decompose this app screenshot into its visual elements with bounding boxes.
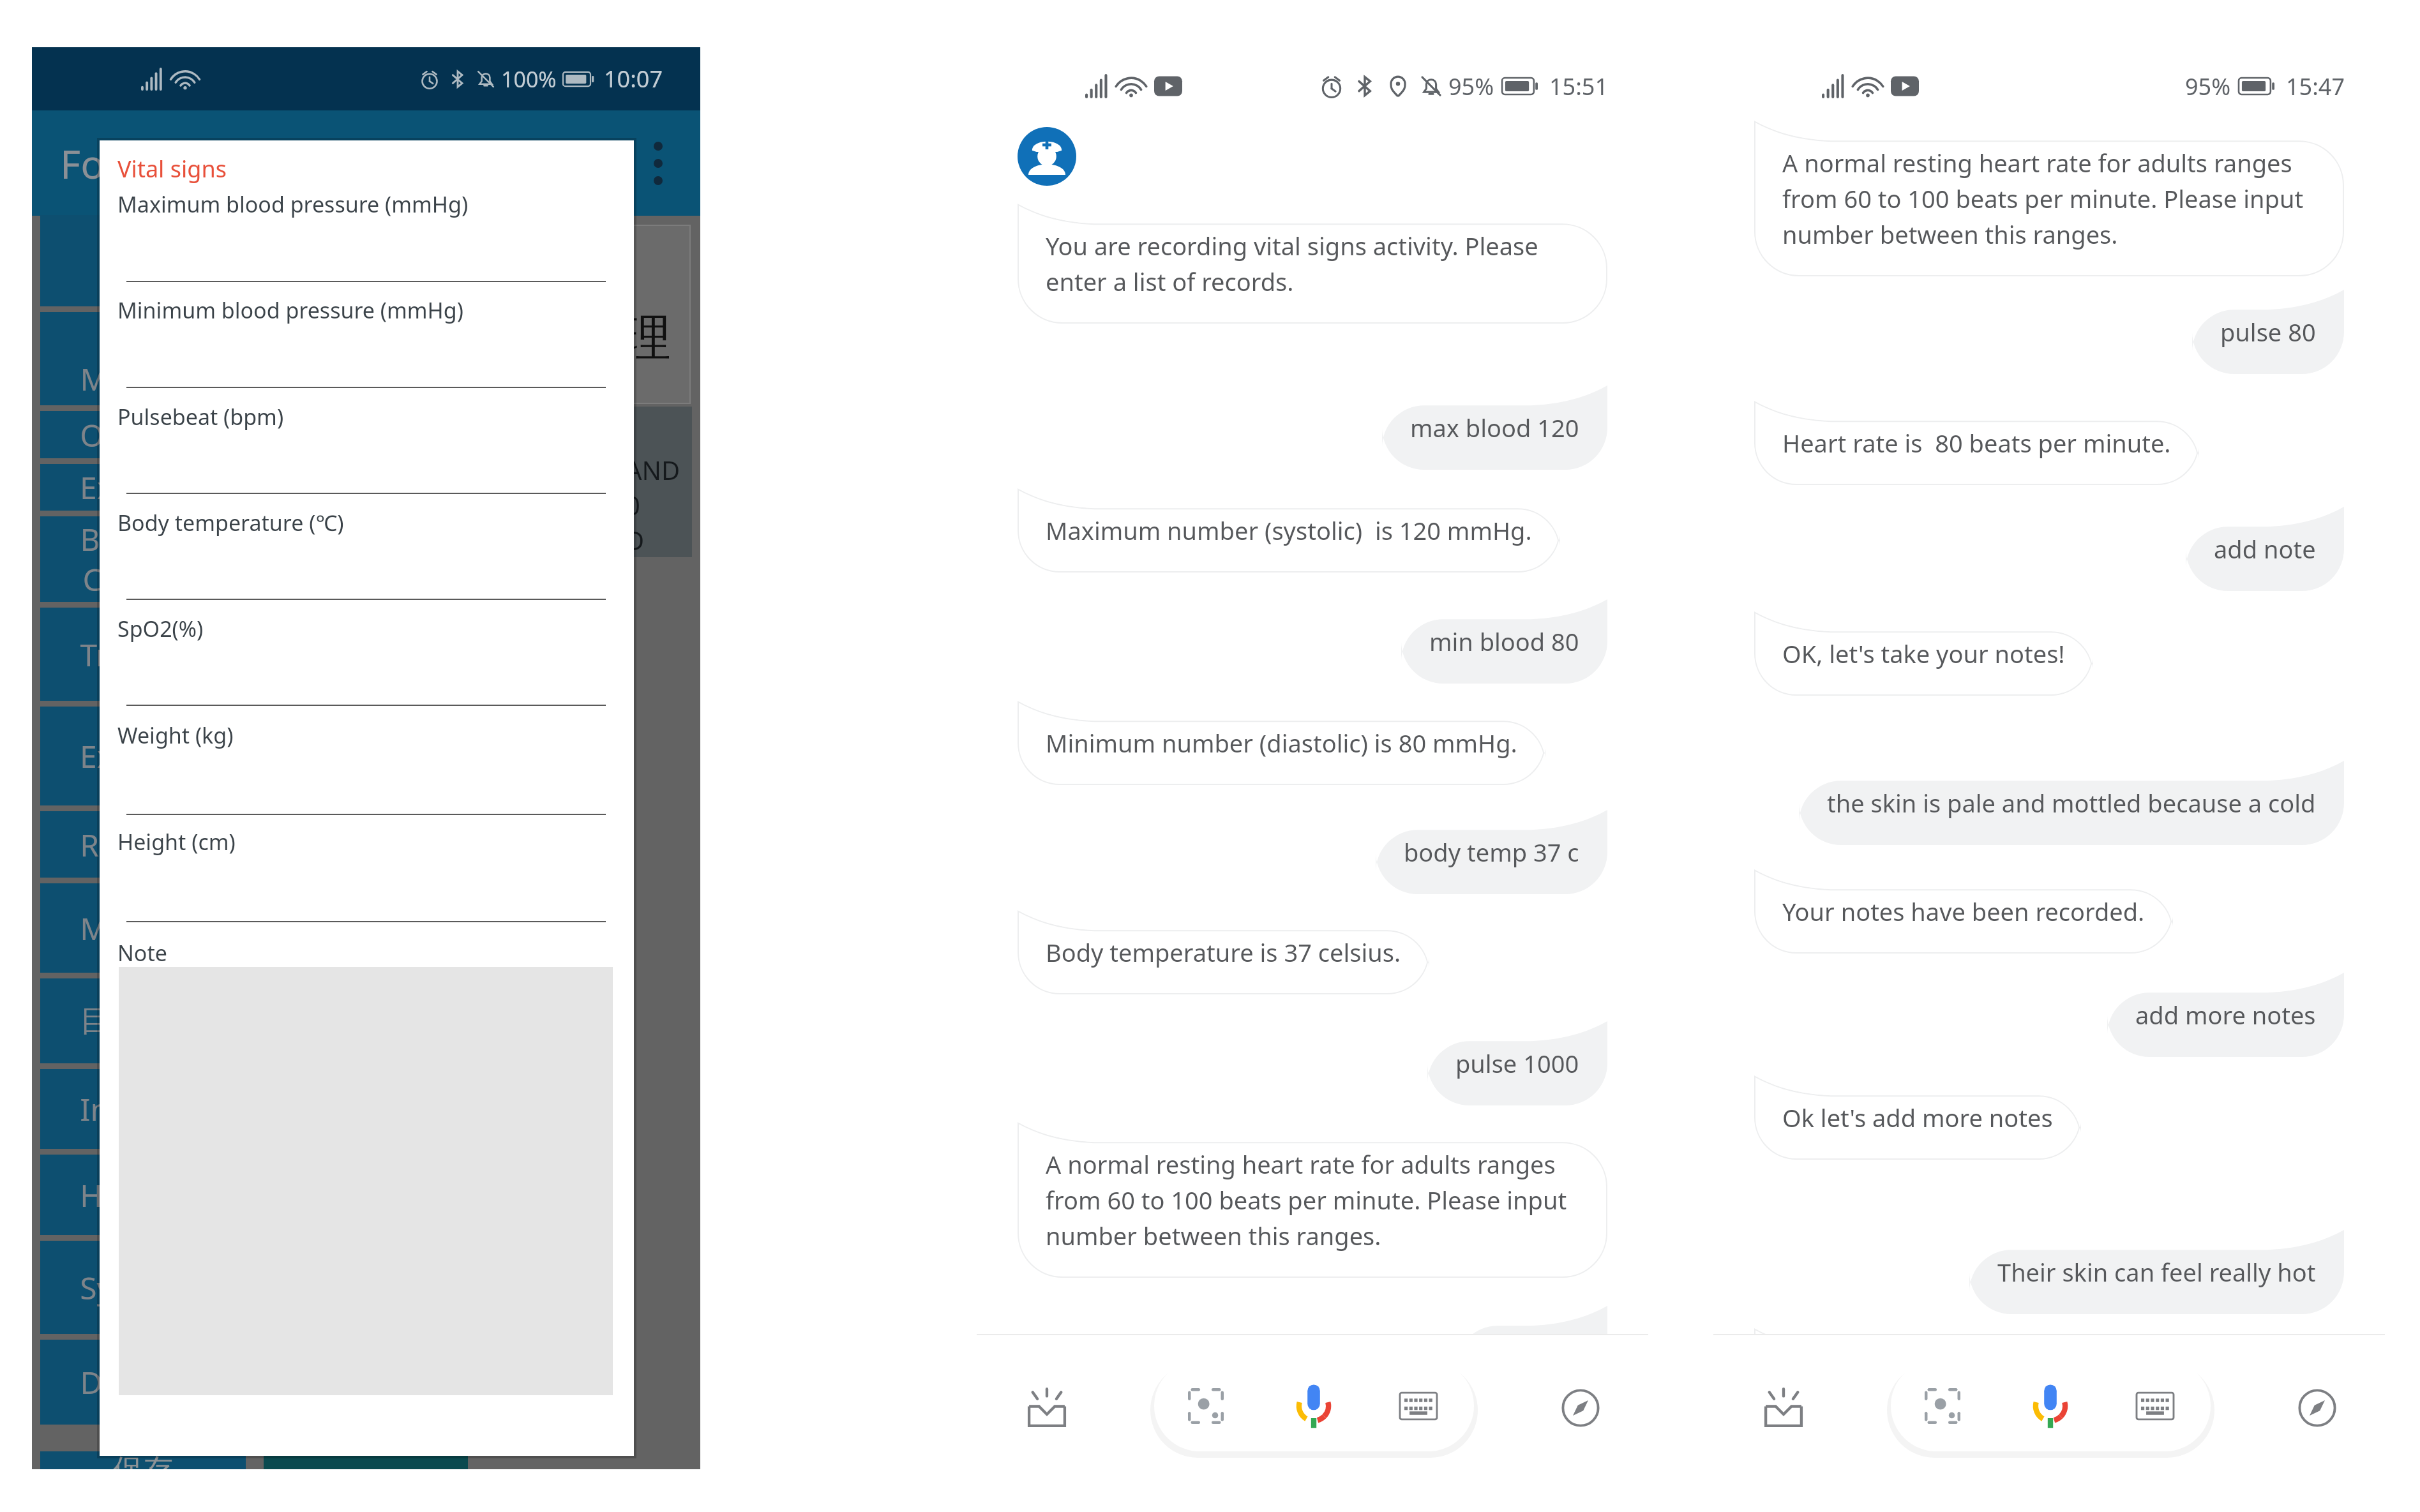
button[interactable]: Hist [40,1155,634,1235]
staticText: Sync [80,1267,146,1308]
button[interactable]: Ok [1754,1328,1842,1412]
staticText: Minimum number (diastolic) is 80 mmHg. [1046,726,1517,760]
staticText: 保存 [112,1451,174,1469]
staticText: Weight (kg) [117,721,234,750]
button[interactable]: Google Lens [1904,1368,1981,1444]
button[interactable]: Old [40,411,634,458]
button[interactable]: Trace [40,608,634,701]
staticText: Heart rate is 80 beats per minute. [1782,426,2171,460]
button[interactable]: Pulsebeat (bpm) [117,398,616,498]
button[interactable]: add more notes [2107,973,2344,1057]
button[interactable]: Exam [40,464,634,511]
button[interactable]: body temp 37 c [1376,810,1607,894]
button[interactable]: Info [40,1069,634,1149]
button[interactable] [40,215,634,306]
button[interactable]: New Measure [40,312,634,405]
staticText: Minimum blood pressure (mmHg) [117,296,463,325]
button[interactable]: Explore [1551,1379,1610,1437]
staticText: New Measure [80,318,206,400]
button[interactable]: Ok let's add more notes [1754,1075,2081,1160]
staticText: Height (cm) [117,827,236,857]
staticText: Maximum blood pressure (mmHg) [117,190,469,219]
button[interactable]: More [40,883,634,973]
staticText: 目录 [80,1002,141,1040]
staticText: 管理 [574,308,671,369]
staticText: pulse 80 [1484,1331,1579,1365]
button[interactable]: pulse 1000 [1427,1021,1607,1105]
button[interactable]: Your notes have been recorded. [1754,869,2173,954]
button[interactable]: Data [40,1340,634,1425]
button[interactable]: Weight (kg) [117,717,616,819]
button[interactable]: min blood 80 [1401,599,1607,684]
button[interactable]: Their skin can feel really hot [1969,1230,2344,1314]
staticText: Record [80,824,181,865]
button[interactable]: A normal resting heart rate for adults r… [1754,121,2344,276]
staticText: 100% [501,64,557,94]
staticText: Their skin can feel really hot [1997,1255,2316,1289]
staticText: Baby Care [80,518,151,600]
button[interactable]: Body temperature is 37 celsius. [1018,910,1429,994]
staticText: pulse 80 [2220,315,2316,348]
button[interactable]: Body temperature (℃) [117,504,616,604]
button[interactable]: pulse 80 [2192,290,2344,374]
button[interactable]: 目录 [40,978,634,1063]
staticText: Data [80,1361,148,1403]
staticText: More [80,908,156,949]
button[interactable]: Exit [40,707,634,805]
staticText: max blood 120 [1410,411,1579,444]
button[interactable]: Minimum blood pressure (mmHg) [117,292,616,392]
staticText: Hist [80,1174,137,1216]
button[interactable]: Note [117,934,616,1399]
button[interactable]: You are recording vital signs activity. … [1018,204,1607,324]
staticText: Note [117,938,167,968]
staticText: pulse 1000 [1455,1047,1579,1080]
button[interactable]: Record [40,811,634,878]
button[interactable]: Height (cm) [117,823,616,926]
staticText: You are recording vital signs activity. … [1046,229,1579,298]
button[interactable]: Cancel [264,1451,468,1469]
staticText: A normal resting heart rate for adults r… [1046,1148,1579,1252]
button[interactable]: Minimum number (diastolic) is 80 mmHg. [1018,701,1545,785]
button[interactable]: Sync [40,1241,634,1334]
staticText: Vital signs [117,153,227,184]
staticText: 95% [1448,71,1494,102]
staticText: A normal resting heart rate for adults r… [1782,146,2316,251]
staticText: Form [60,137,158,190]
staticText: AND 0 D [626,453,680,558]
staticText: 15:51 [1549,71,1609,102]
button[interactable]: Baby Care [40,516,634,602]
button[interactable]: Maximum blood pressure (mmHg) [117,186,616,286]
staticText: min blood 80 [1429,625,1579,658]
staticText: Exam [80,467,159,508]
button[interactable]: Inbox [1018,1379,1076,1437]
staticText: body temp 37 c [1404,835,1579,869]
button[interactable]: Google Lens [1168,1368,1244,1444]
staticText: Old [80,414,131,456]
button[interactable]: max blood 120 [1382,385,1607,470]
staticText: Body temperature is 37 celsius. [1046,936,1401,969]
staticText: 10:07 [604,63,663,94]
button[interactable]: SpO2(%) [117,610,616,710]
staticText: 95% [2185,71,2231,102]
button[interactable]: More options [633,125,684,202]
button[interactable]: pulse 80 [1455,1306,1607,1390]
button[interactable]: Inbox [1754,1379,1813,1437]
staticText: OK, let's take your notes! [1782,637,2065,670]
staticText: Pulsebeat (bpm) [117,402,284,431]
button[interactable]: add note [2186,507,2344,591]
staticText: Exit [80,735,132,777]
button[interactable]: Explore [2288,1379,2347,1437]
button[interactable]: the skin is pale and mottled because a c… [1799,761,2344,845]
button[interactable]: A normal resting heart rate for adults r… [1018,1122,1607,1278]
staticText: Info [80,1088,139,1130]
button[interactable]: OK, let's take your notes! [1754,611,2093,696]
button[interactable]: Heart rate is 80 beats per minute. [1754,401,2199,485]
button[interactable]: 保存 [40,1451,246,1469]
staticText: 15:47 [2286,71,2345,102]
button[interactable]: Keyboard [2117,1368,2193,1444]
button[interactable]: Voice search [2012,1368,2089,1444]
button[interactable]: Keyboard [1380,1368,1457,1444]
button[interactable]: Voice search [1275,1368,1352,1444]
button[interactable]: Maximum number (systolic) is 120 mmHg. [1018,488,1560,573]
